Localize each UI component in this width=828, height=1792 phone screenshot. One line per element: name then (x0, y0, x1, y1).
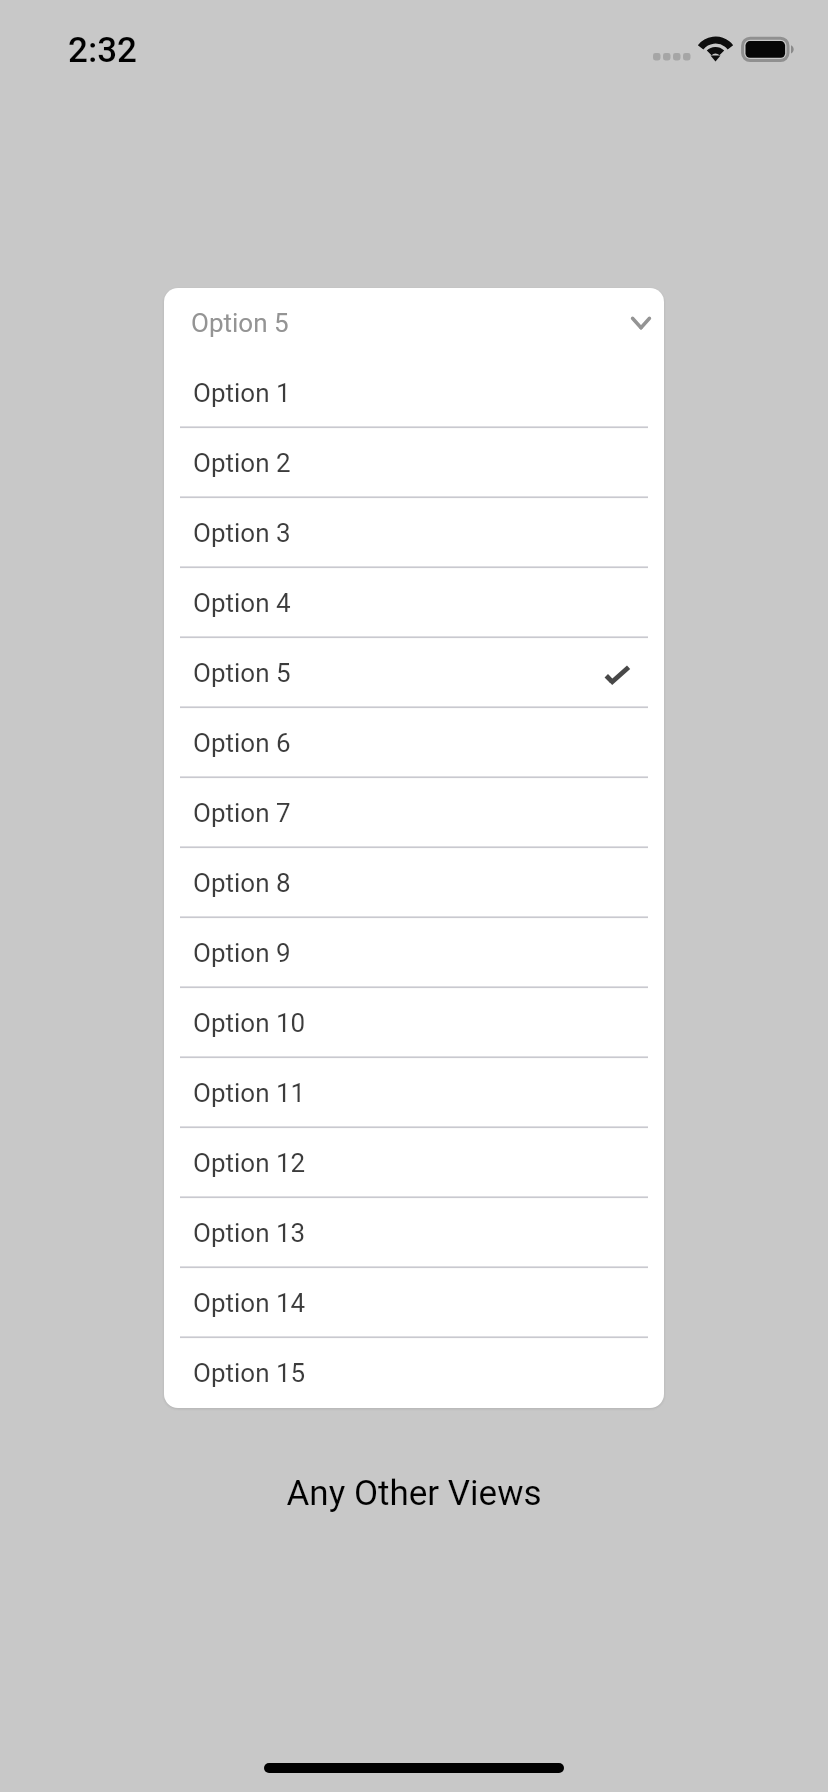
button[interactable]: Option 8 (164, 848, 664, 918)
other: Expand dropdown (629, 311, 653, 335)
staticText: Any Other Views (0, 1473, 828, 1514)
button[interactable]: Option 11 (164, 1058, 664, 1128)
staticText: Option 12 (193, 1148, 306, 1178)
button[interactable]: Option 14 (164, 1268, 664, 1338)
button[interactable]: Option 2 (164, 428, 664, 498)
staticText: Option 9 (193, 938, 291, 968)
staticText: Option 1 (193, 378, 291, 408)
other: Selected (600, 657, 632, 689)
staticText: Option 10 (193, 1008, 306, 1038)
button[interactable]: Option 15 (164, 1338, 664, 1408)
button[interactable]: Option 5 (164, 288, 664, 358)
button[interactable]: Option 9 (164, 918, 664, 988)
button[interactable]: Option 12 (164, 1128, 664, 1198)
staticText: Option 8 (193, 868, 291, 898)
staticText: 2:32 (68, 30, 137, 71)
button[interactable]: Option 6 (164, 708, 664, 778)
button[interactable]: Option 7 (164, 778, 664, 848)
staticText: Option 7 (193, 798, 291, 828)
button[interactable]: Option 5 (164, 638, 664, 708)
staticText: Option 11 (193, 1078, 306, 1108)
staticText: Option 5 (191, 308, 289, 338)
button[interactable]: Option 1 (164, 358, 664, 428)
staticText: Option 5 (193, 658, 291, 688)
button[interactable]: Option 10 (164, 988, 664, 1058)
button[interactable]: Option 3 (164, 498, 664, 568)
staticText: Option 14 (193, 1288, 306, 1318)
staticText: Option 4 (193, 588, 291, 618)
staticText: Option 13 (193, 1218, 306, 1248)
staticText: Option 3 (193, 518, 291, 548)
button[interactable]: Option 4 (164, 568, 664, 638)
staticText: Option 6 (193, 728, 291, 758)
staticText: Option 15 (193, 1358, 306, 1388)
staticText: Option 2 (193, 448, 291, 478)
button[interactable]: Option 13 (164, 1198, 664, 1268)
